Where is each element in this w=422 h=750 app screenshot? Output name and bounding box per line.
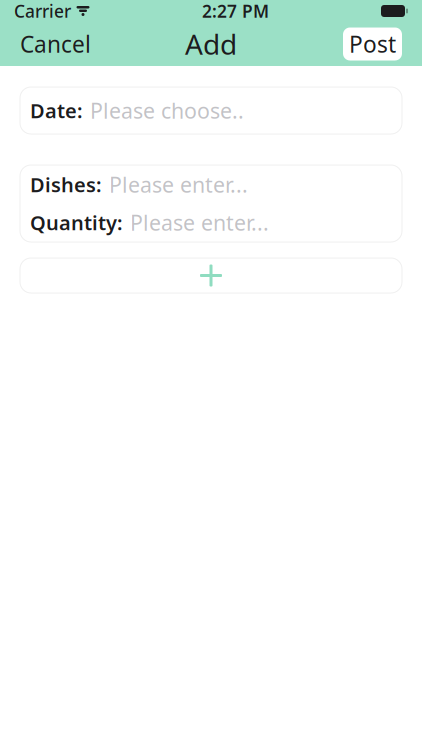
staticText: Add (185, 25, 237, 63)
button[interactable]: Date: (20, 87, 402, 134)
staticText: Post (349, 29, 396, 59)
staticText: Please enter... (109, 170, 248, 199)
staticText: Carrier (14, 0, 71, 22)
staticText: Please choose.. (90, 96, 244, 125)
staticText: Date: (30, 97, 83, 124)
button[interactable]: Quantity: (20, 203, 402, 241)
staticText: Please enter... (130, 208, 269, 237)
staticText: Cancel (20, 29, 91, 59)
button[interactable]: Dishes: (20, 165, 402, 203)
staticText: 2:27 PM (202, 0, 269, 22)
button[interactable]: Post (343, 27, 402, 60)
button[interactable]: Add dish (20, 258, 402, 293)
staticText: Quantity: (30, 209, 123, 236)
button[interactable]: Cancel (0, 22, 103, 66)
staticText: Dishes: (30, 171, 102, 198)
